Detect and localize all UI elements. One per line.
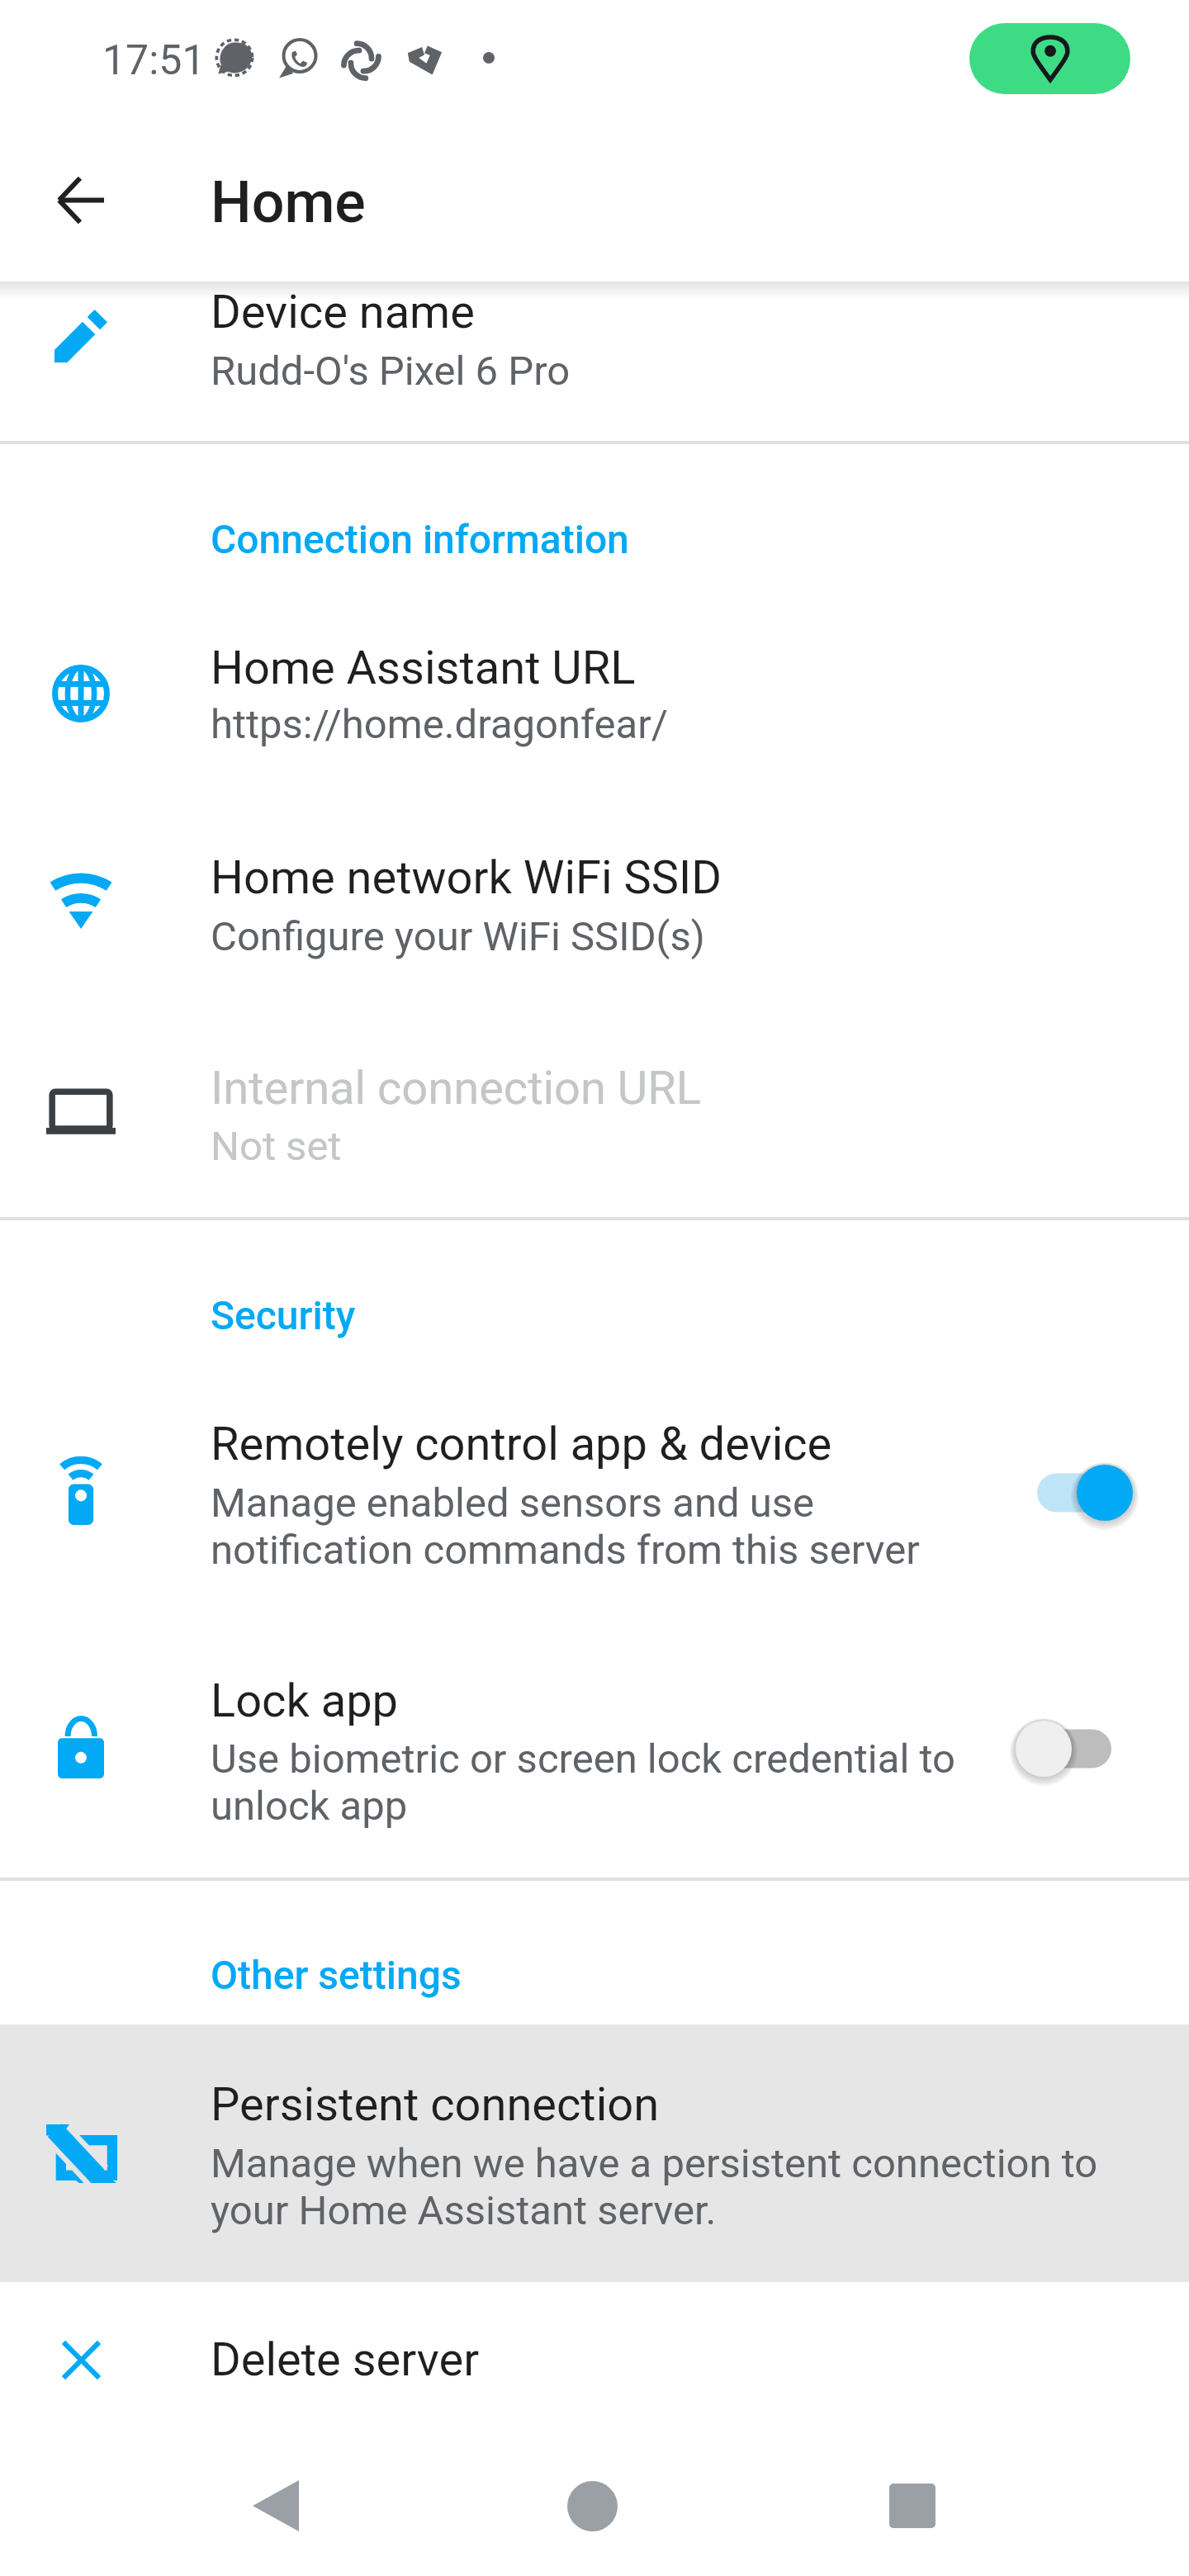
staticText: Internal connection URL (211, 1061, 701, 1115)
button[interactable]: Home (551, 2465, 633, 2547)
staticText: Remotely control app & device (211, 1417, 832, 1471)
button[interactable]: Location in use (969, 23, 1130, 94)
button[interactable]: Delete server (0, 2304, 1189, 2419)
staticText: Rudd-O's Pixel 6 Pro (211, 348, 571, 395)
staticText: Home network WiFi SSID (211, 850, 722, 905)
staticText: Configure your WiFi SSID(s) (211, 913, 705, 960)
staticText: Not set (211, 1123, 342, 1170)
button[interactable]: Home Assistant URL (0, 594, 1189, 793)
staticText: Other settings (211, 1952, 462, 1998)
staticText: Persistent connection (211, 2077, 660, 2132)
staticText: Manage enabled sensors and use notificat… (211, 1480, 920, 1574)
button[interactable]: Navigate up (40, 159, 121, 240)
staticText: Use biometric or screen lock credential … (211, 1735, 955, 1830)
button[interactable]: Persistent connection (0, 2024, 1189, 2282)
button[interactable]: Remotely control app and device (1012, 1435, 1161, 1551)
staticText: Home Assistant URL (211, 641, 636, 695)
button[interactable]: Remotely control app & device (0, 1387, 1189, 1602)
button[interactable]: Home network WiFi SSID (0, 805, 1189, 1003)
staticText: Security (211, 1292, 356, 1338)
staticText: Delete server (211, 2332, 480, 2387)
button[interactable]: Lock app (0, 1643, 1189, 1858)
staticText: Device name (211, 285, 475, 339)
button[interactable]: Device name (0, 289, 1189, 441)
staticText: Lock app (211, 1674, 399, 1728)
staticText: Connection information (211, 516, 629, 562)
staticText: Manage when we have a persistent connect… (211, 2140, 1098, 2234)
staticText: Home (211, 168, 366, 236)
button[interactable]: Lock app (1012, 1691, 1161, 1807)
staticText: https://home.dragonfear/ (211, 701, 668, 748)
button[interactable]: Internal connection URL (0, 1016, 1189, 1214)
button[interactable]: Back (234, 2465, 317, 2547)
button[interactable]: Recent apps (871, 2465, 954, 2547)
staticText: 17:51 (102, 36, 206, 85)
